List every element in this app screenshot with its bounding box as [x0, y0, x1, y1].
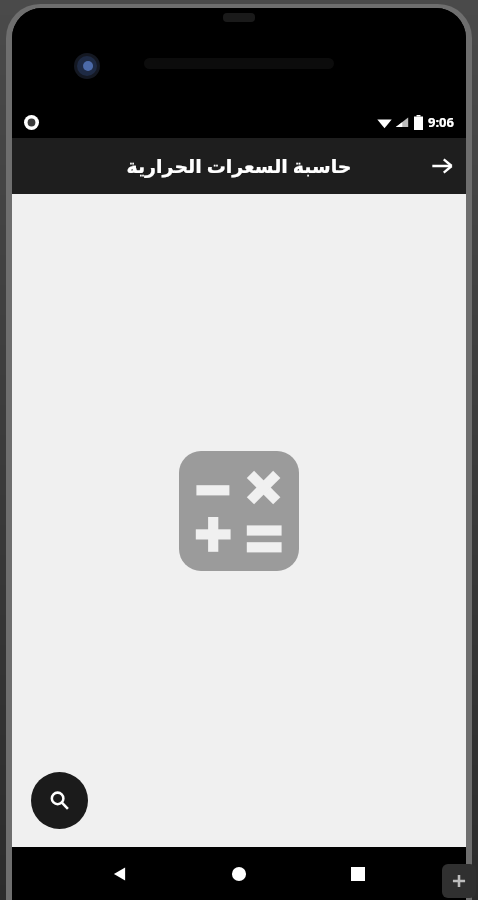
button[interactable]: Forward	[418, 142, 466, 190]
button[interactable]: Back	[98, 852, 142, 896]
staticText: حاسبة السعرات الحرارية	[68, 153, 410, 179]
button[interactable]: Recent apps	[336, 852, 380, 896]
button[interactable]: Search	[31, 772, 88, 829]
button[interactable]: Add	[442, 864, 476, 898]
staticText: 9:06	[428, 113, 454, 131]
button[interactable]: Home	[217, 852, 261, 896]
